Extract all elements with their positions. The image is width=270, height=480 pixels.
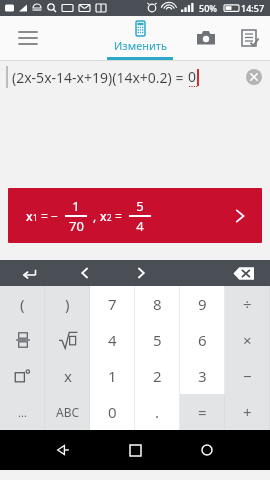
button[interactable]: Back (48, 435, 78, 465)
staticText: ... (18, 405, 27, 420)
staticText: 0 (188, 67, 197, 86)
staticText: × (243, 330, 252, 350)
button[interactable]: Move right (128, 260, 154, 286)
staticText: x (64, 366, 72, 386)
button[interactable]: x (45, 358, 90, 394)
button[interactable]: Camera (184, 16, 228, 60)
staticText: 70 (69, 217, 84, 235)
staticText: 1 (72, 197, 80, 215)
button[interactable]: Backspace (228, 260, 258, 286)
button[interactable]: Move left (72, 260, 98, 286)
button[interactable]: 4 (90, 322, 135, 358)
staticText: (2x-5x-14-x+19)(14x+0.2) = (12, 68, 188, 87)
button[interactable]: 0 (90, 394, 135, 430)
staticText: 4 (136, 217, 144, 235)
staticText: 8 (153, 294, 162, 314)
staticText: x (26, 208, 33, 224)
staticText: 1 (108, 366, 117, 386)
button[interactable]: = (180, 394, 225, 430)
button[interactable]: x (8, 188, 262, 243)
staticText: + (243, 402, 252, 422)
staticText: ( (20, 294, 25, 314)
staticText: ) (65, 294, 70, 314)
button[interactable]: ÷ (225, 286, 270, 322)
staticText: 1 (33, 212, 38, 223)
button[interactable]: Recents (192, 435, 222, 465)
button[interactable]: Clear (244, 67, 264, 87)
staticText: = − (38, 208, 62, 224)
button[interactable]: 9 (180, 286, 225, 322)
staticText: 2 (153, 366, 162, 386)
button[interactable]: ABC (45, 394, 90, 430)
button[interactable]: + (225, 394, 270, 430)
button[interactable]: 5 (135, 322, 180, 358)
button[interactable]: Home (120, 435, 150, 465)
staticText: 14:57 (241, 2, 265, 14)
button[interactable]: 8 (135, 286, 180, 322)
button[interactable]: 1 (90, 358, 135, 394)
button[interactable]: − (225, 358, 270, 394)
staticText: 3 (198, 366, 207, 386)
button[interactable]: Notes (228, 16, 270, 60)
staticText: ÷ (243, 294, 252, 314)
button[interactable]: 7 (90, 286, 135, 322)
staticText: 7 (108, 294, 117, 314)
button[interactable] (0, 322, 45, 358)
staticText: − (243, 366, 252, 386)
button[interactable]: Menu (0, 16, 56, 60)
staticText: Изменить (114, 38, 167, 53)
button[interactable]: . (135, 394, 180, 430)
button[interactable]: × (225, 322, 270, 358)
button[interactable]: ( (0, 286, 45, 322)
staticText: 50% (199, 2, 217, 14)
button[interactable]: ) (45, 286, 90, 322)
staticText: . (155, 402, 160, 422)
staticText: 5 (153, 330, 162, 350)
staticText: 0 (108, 402, 117, 422)
staticText: 9 (198, 294, 207, 314)
button[interactable]: 2 (135, 358, 180, 394)
button[interactable]: 6 (180, 322, 225, 358)
button[interactable]: 3 (180, 358, 225, 394)
staticText: 2 (107, 212, 112, 223)
staticText: 4 (108, 330, 117, 350)
staticText: x (100, 208, 107, 224)
button[interactable] (45, 322, 90, 358)
staticText: ABC (56, 404, 80, 420)
button[interactable]: Enter (16, 260, 42, 286)
staticText: 5 (136, 197, 144, 215)
staticText: 6 (198, 330, 207, 350)
staticText: = (198, 402, 207, 422)
staticText: , (90, 208, 100, 224)
button[interactable]: ... (0, 394, 45, 430)
button[interactable] (0, 358, 45, 394)
staticText: = (112, 208, 126, 224)
button[interactable]: Изменить (96, 16, 184, 60)
